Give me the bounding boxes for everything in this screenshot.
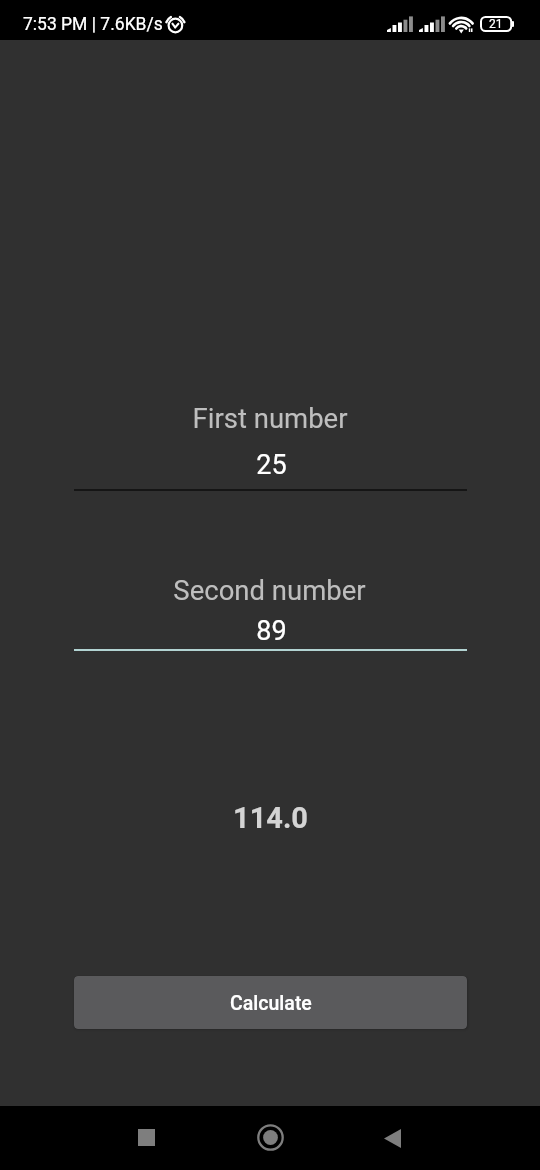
button[interactable]: Home — [230, 1106, 310, 1170]
button[interactable]: Calculate — [74, 976, 467, 1029]
staticText: 25 — [256, 449, 287, 481]
staticText: 89 — [256, 615, 287, 647]
staticText: 7:53 PM | 7.6KB/s — [23, 14, 163, 35]
staticText: Calculate — [230, 992, 312, 1015]
staticText: 114.0 — [233, 801, 308, 835]
button[interactable]: Recent apps — [106, 1106, 186, 1170]
staticText: 21 — [489, 17, 503, 31]
staticText: Second number — [173, 574, 366, 606]
button[interactable]: Back — [352, 1106, 432, 1170]
staticText: First number — [192, 402, 348, 434]
